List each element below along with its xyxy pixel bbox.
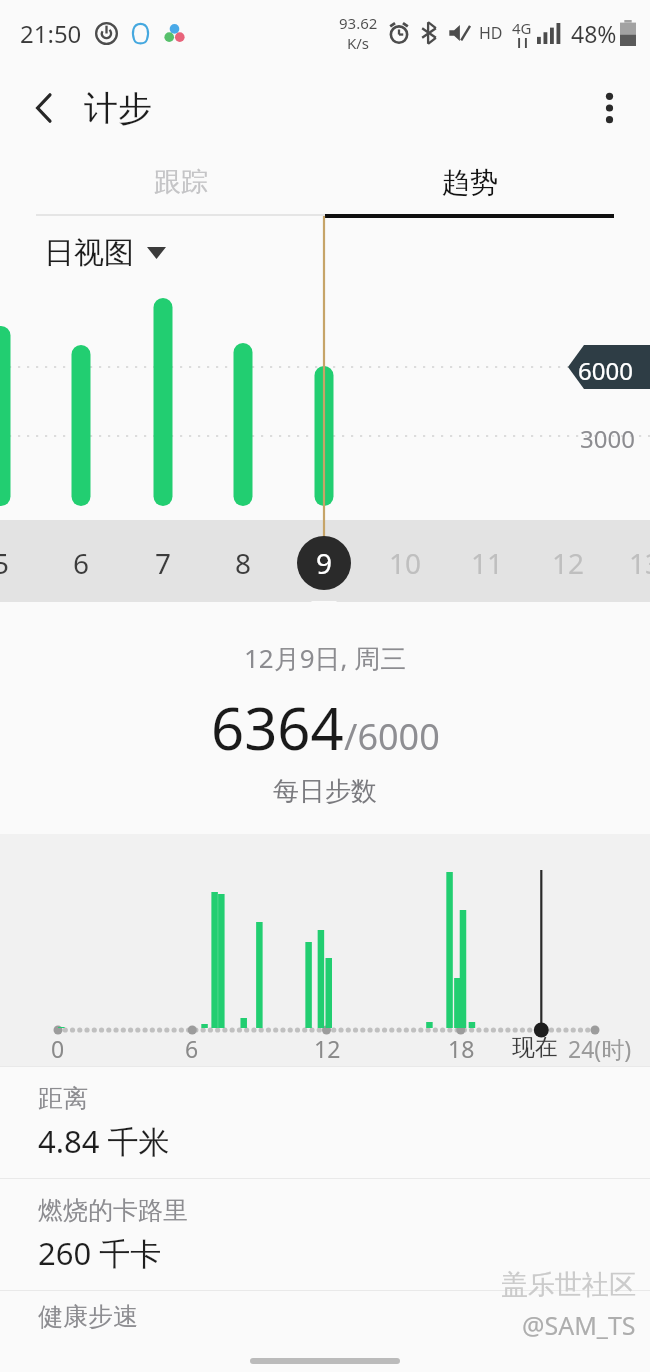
staticText: 9 <box>316 544 333 582</box>
staticText: 跟踪 <box>154 165 208 199</box>
staticText: 7 <box>155 544 172 582</box>
button[interactable]: Back <box>18 82 70 134</box>
staticText: 趋势 <box>442 165 498 200</box>
staticText: 21:50 <box>20 17 82 50</box>
staticText: K/s <box>347 33 370 53</box>
staticText: 24(时) <box>568 1033 632 1064</box>
button[interactable]: 11 <box>461 537 513 589</box>
staticText: 燃烧的卡路里 <box>38 1195 188 1226</box>
button[interactable]: 距离 <box>0 1066 650 1178</box>
button[interactable]: 13 <box>619 537 650 589</box>
staticText: 18 <box>448 1033 475 1063</box>
staticText: 5 <box>0 544 10 582</box>
staticText: 48% <box>571 18 617 49</box>
staticText: 13 <box>629 544 650 582</box>
staticText: 距离 <box>38 1083 88 1114</box>
staticText: 6000 <box>578 354 633 387</box>
staticText: 4.84 千米 <box>38 1120 170 1162</box>
button[interactable]: 6 <box>55 537 107 589</box>
staticText: 健康步速 <box>38 1301 138 1332</box>
button[interactable]: 跟踪 <box>36 150 325 214</box>
staticText: 每日步数 <box>273 775 377 808</box>
staticText: 10 <box>389 544 422 582</box>
staticText: 12 <box>314 1033 341 1063</box>
staticText: 日视图 <box>44 234 134 272</box>
button[interactable]: 健康步速 <box>0 1291 650 1335</box>
staticText: 计步 <box>84 87 152 130</box>
button[interactable]: 燃烧的卡路里 <box>0 1178 650 1290</box>
staticText: 260 千卡 <box>38 1232 162 1274</box>
staticText: 现在 <box>512 1033 558 1062</box>
staticText: 12 <box>552 544 585 582</box>
staticText: /6000 <box>344 712 440 761</box>
button[interactable]: 10 <box>379 537 431 589</box>
button[interactable]: More options <box>582 81 636 135</box>
button[interactable]: 趋势 <box>325 150 614 214</box>
staticText: 12月9日, 周三 <box>244 640 407 676</box>
staticText: @SAM_TS <box>522 1308 636 1342</box>
staticText: 4G <box>512 18 532 38</box>
staticText: 3000 <box>580 422 635 455</box>
staticText: 盖乐世社区 <box>501 1268 636 1302</box>
staticText: 8 <box>235 544 252 582</box>
staticText: 6 <box>185 1033 199 1063</box>
button[interactable]: 8 <box>217 537 269 589</box>
button[interactable]: 日视图 <box>44 234 166 272</box>
button[interactable]: 7 <box>137 537 189 589</box>
staticText: 0 <box>51 1033 65 1063</box>
staticText: 6 <box>73 544 90 582</box>
staticText: HD <box>479 22 503 44</box>
button[interactable]: 5 <box>0 537 27 589</box>
button[interactable]: 12 <box>542 537 594 589</box>
staticText: 93.62 <box>339 13 378 33</box>
staticText: 6364 <box>211 688 344 767</box>
staticText: 11 <box>471 544 504 582</box>
button[interactable]: 9 <box>298 537 350 589</box>
